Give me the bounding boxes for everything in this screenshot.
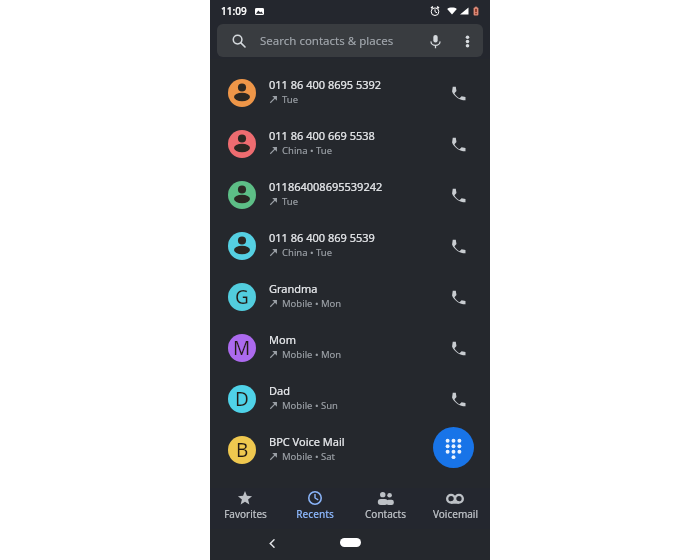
- staticText: Voicemail: [433, 507, 478, 521]
- staticText: D: [235, 386, 249, 412]
- staticText: 011 86 400 669 5538: [269, 128, 375, 143]
- button[interactable]: Open dialpad: [433, 427, 474, 468]
- button[interactable]: 011 86 400 869 5539: [210, 220, 490, 271]
- staticText: G: [235, 284, 249, 310]
- staticText: BPC Voice Mail: [269, 434, 345, 449]
- button[interactable]: Call: [440, 127, 474, 161]
- staticText: Grandma: [269, 281, 318, 296]
- button[interactable]: Home: [340, 538, 361, 547]
- button[interactable]: Call: [440, 280, 474, 314]
- button[interactable]: Call: [440, 76, 474, 110]
- button[interactable]: 011 86 400 669 5538: [210, 118, 490, 169]
- staticText: Mobile • Mon: [282, 348, 342, 361]
- staticText: Favorites: [224, 507, 267, 521]
- button[interactable]: Call: [440, 229, 474, 263]
- button[interactable]: Recents: [280, 488, 350, 529]
- button[interactable]: M: [210, 322, 490, 373]
- button[interactable]: Contacts: [350, 488, 420, 529]
- button[interactable]: D: [210, 373, 490, 424]
- staticText: 011 86 400 869 5539: [269, 230, 375, 245]
- button[interactable]: Voicemail: [420, 488, 490, 529]
- staticText: B: [236, 437, 249, 463]
- button[interactable]: Call: [440, 382, 474, 416]
- staticText: Mom: [269, 332, 296, 347]
- button[interactable]: Voice search: [425, 31, 445, 51]
- button[interactable]: B: [210, 424, 490, 475]
- staticText: Recents: [296, 507, 334, 521]
- button[interactable]: Call: [440, 433, 474, 467]
- staticText: Dad: [269, 383, 290, 398]
- staticText: Tue: [282, 93, 299, 106]
- staticText: Contacts: [365, 507, 406, 521]
- button[interactable]: Call: [440, 178, 474, 212]
- staticText: M: [233, 335, 251, 361]
- button[interactable]: Search contacts & places: [217, 24, 483, 57]
- staticText: 011 86 400 8695 5392: [269, 77, 382, 92]
- staticText: 011864008695539242: [269, 179, 383, 194]
- staticText: Tue: [282, 195, 299, 208]
- staticText: Mobile • Sat: [282, 450, 335, 463]
- button[interactable]: 011 86 400 8695 5392: [210, 67, 490, 118]
- staticText: 11:09: [221, 4, 247, 18]
- button[interactable]: G: [210, 271, 490, 322]
- staticText: China • Tue: [282, 246, 333, 259]
- staticText: Search contacts & places: [260, 33, 394, 49]
- staticText: Mobile • Sun: [282, 399, 338, 412]
- button[interactable]: Back: [263, 534, 281, 552]
- button[interactable]: Call: [440, 331, 474, 365]
- button[interactable]: More options: [458, 32, 476, 50]
- button[interactable]: 011864008695539242: [210, 169, 490, 220]
- staticText: China • Tue: [282, 144, 333, 157]
- button[interactable]: Favorites: [210, 488, 280, 529]
- staticText: Mobile • Mon: [282, 297, 342, 310]
